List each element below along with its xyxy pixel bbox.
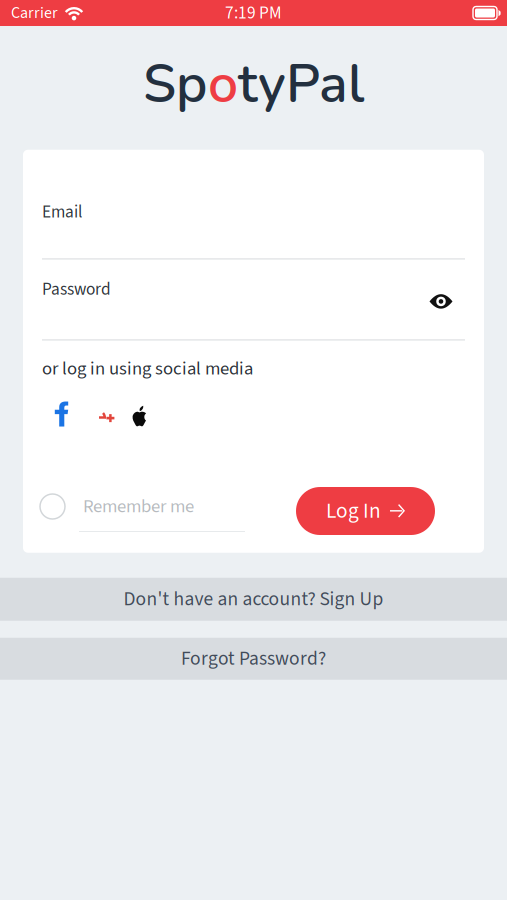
staticText: or log in using social media [42, 355, 253, 382]
staticText: o [208, 48, 238, 121]
staticText: tyPal [238, 48, 364, 121]
staticText: Password [42, 277, 111, 302]
staticText: 7:19 PM [225, 1, 282, 25]
button[interactable]: Remember me [40, 487, 280, 535]
staticText: Forgot Password? [181, 645, 326, 673]
button[interactable]: Log in with Google Plus [90, 409, 115, 426]
staticText: Carrier [11, 2, 58, 24]
staticText: Sp [143, 48, 208, 121]
staticText: Email [42, 200, 82, 224]
staticText: Log In [326, 496, 381, 526]
button[interactable]: Log In [296, 487, 435, 535]
button[interactable]: Log in with Apple [132, 405, 147, 426]
staticText: Remember me [83, 493, 194, 520]
staticText: Don't have an account? Sign Up [123, 585, 383, 613]
button[interactable]: Forgot Password? [0, 638, 507, 680]
button[interactable]: Log in with Facebook [54, 401, 69, 426]
button[interactable]: Don't have an account? Sign Up [0, 578, 507, 621]
button[interactable]: Show password [429, 293, 453, 309]
